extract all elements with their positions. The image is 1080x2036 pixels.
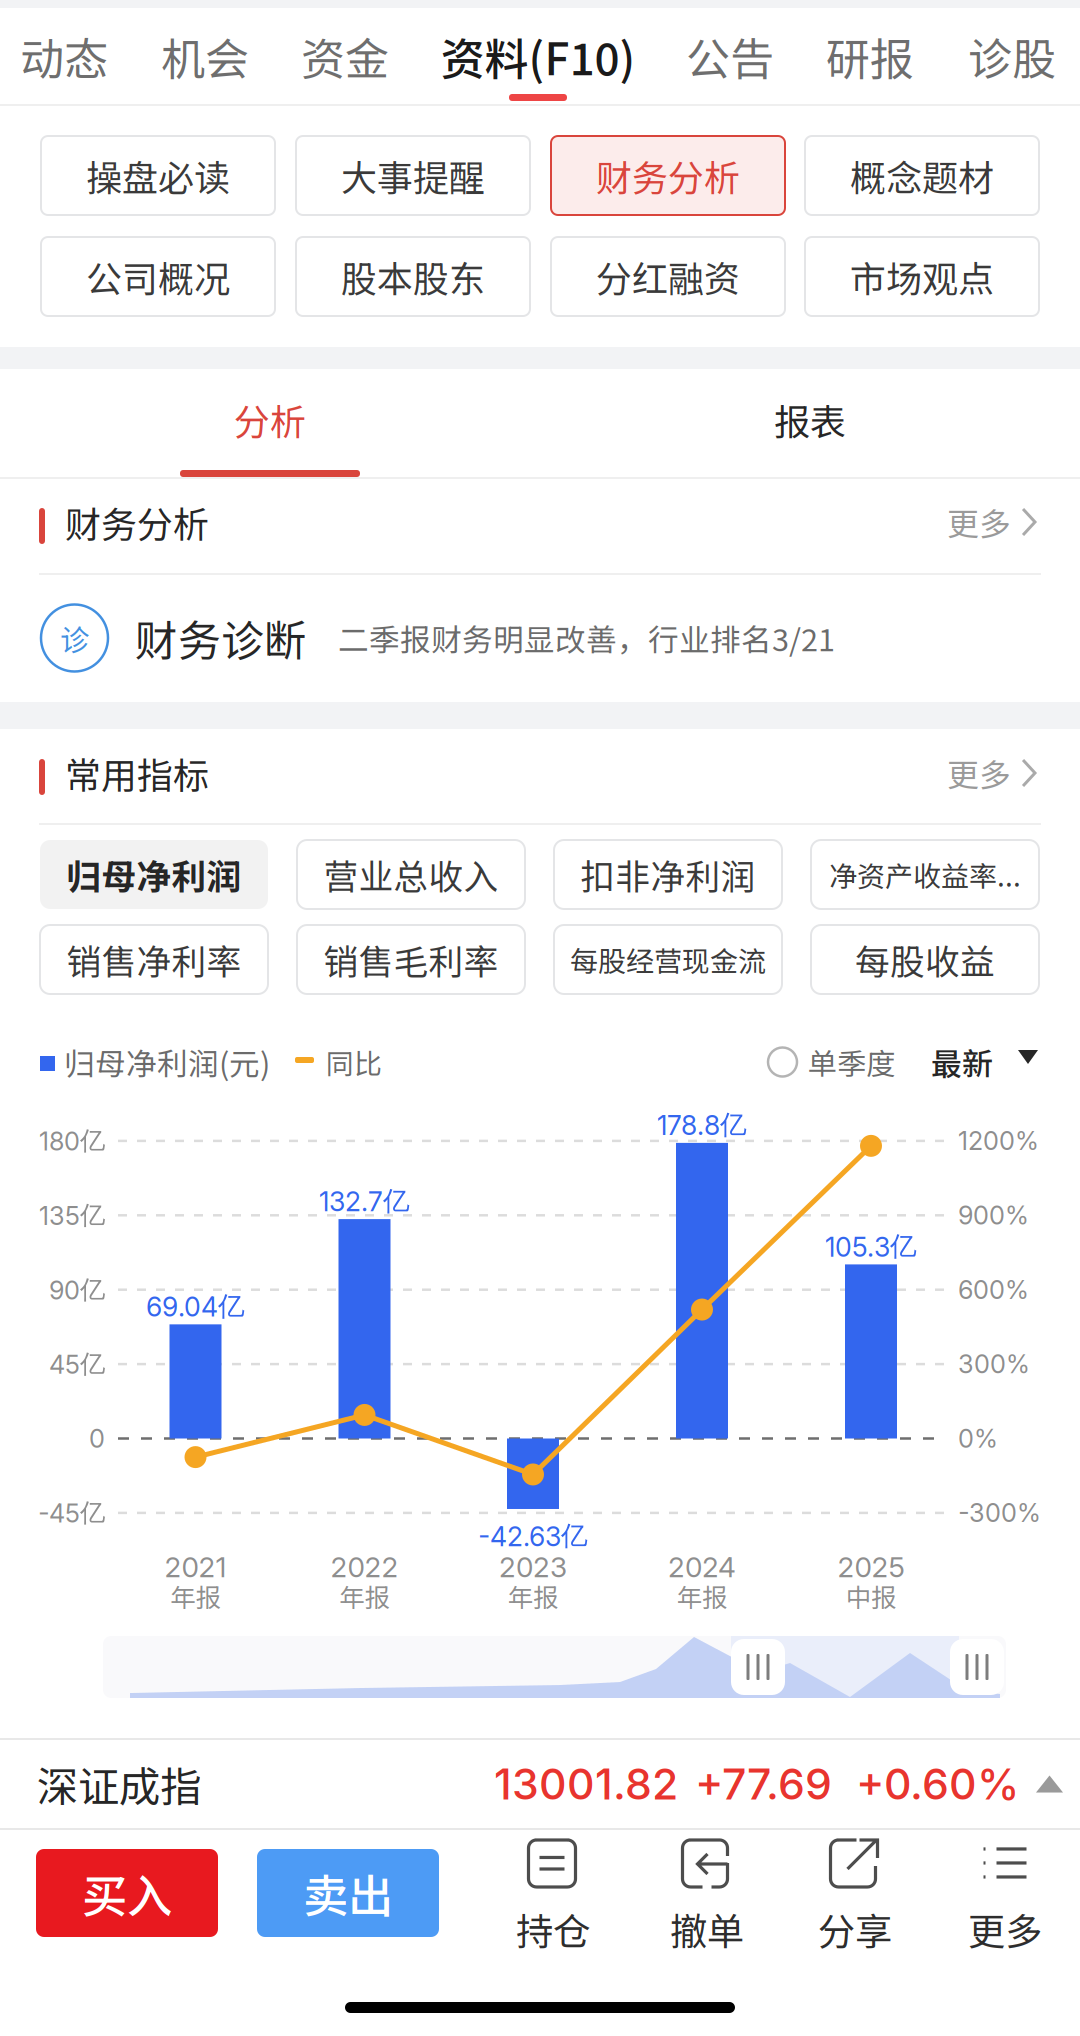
staticText: 2022 (330, 1550, 398, 1584)
staticText: 净资产收益率... (829, 854, 1021, 895)
staticText: 深证成指 (37, 1754, 201, 1814)
staticText: 归母净利润(元) (64, 1040, 270, 1084)
staticText: 财务诊断 (135, 607, 307, 669)
button[interactable]: 深证成指 (0, 0, 1080, 2036)
staticText: 研报 (826, 24, 914, 88)
staticText: 每股收益 (855, 934, 995, 985)
staticText: 最新 (931, 1040, 993, 1084)
staticText: 常用指标 (65, 747, 209, 799)
staticText: 营业总收入 (323, 849, 498, 900)
staticText: 单季度 (808, 1041, 895, 1083)
staticText: 扣非净利润 (580, 849, 755, 900)
staticText: 年报 (170, 1578, 220, 1614)
staticText: 财务分析 (596, 149, 740, 201)
staticText: 105.3亿 (825, 1230, 917, 1263)
staticText: 年报 (339, 1578, 389, 1614)
button[interactable]: 资金 (0, 0, 1080, 2036)
button[interactable]: 归母净利润 (0, 0, 1080, 2036)
button[interactable]: 扣非净利润 (0, 0, 1080, 2036)
staticText: 股本股东 (341, 250, 485, 302)
button[interactable]: 分析 (0, 0, 1080, 2036)
button[interactable]: 操盘必读 (0, 0, 1080, 2036)
button[interactable]: 诊股 (0, 0, 1080, 2036)
button[interactable]: 撤单 (0, 0, 1080, 2036)
staticText: 持仓 (516, 1902, 590, 1956)
staticText: 卖出 (303, 1860, 393, 1926)
button[interactable]: 诊 (0, 0, 1080, 2036)
staticText: 销售毛利率 (323, 934, 498, 985)
staticText: -42.63亿 (478, 1519, 588, 1553)
staticText: 分享 (818, 1902, 892, 1956)
button[interactable]: 公告 (0, 0, 1080, 2036)
staticText: 资料(F10) (440, 24, 635, 88)
staticText: 300% (958, 1349, 1030, 1379)
button[interactable]: 更多 (0, 0, 1080, 2036)
staticText: 买入 (82, 1860, 172, 1926)
staticText: 大事提醒 (341, 149, 485, 201)
staticText: 年报 (508, 1578, 558, 1614)
staticText: 90亿 (49, 1274, 105, 1306)
staticText: 0 (89, 1423, 105, 1454)
button[interactable]: 市场观点 (0, 0, 1080, 2036)
staticText: 132.7亿 (319, 1184, 410, 1218)
button[interactable]: 净资产收益率... (0, 0, 1080, 2036)
staticText: 撤单 (670, 1902, 744, 1956)
staticText: 180亿 (39, 1125, 105, 1157)
staticText: 动态 (20, 24, 108, 88)
staticText: 0% (958, 1423, 998, 1454)
staticText: +77.69 (695, 1758, 832, 1810)
button[interactable]: 每股经营现金流 (0, 0, 1080, 2036)
staticText: 2021 (164, 1550, 226, 1584)
button[interactable]: 持仓 (0, 0, 1080, 2036)
staticText: 操盘必读 (86, 149, 230, 201)
staticText: 概念题材 (850, 149, 994, 201)
button[interactable]: 大事提醒 (0, 0, 1080, 2036)
staticText: 二季报财务明显改善，行业排名3/21 (338, 616, 835, 660)
staticText: 1200% (958, 1126, 1039, 1156)
button[interactable]: 动态 (0, 0, 1080, 2036)
staticText: 分析 (234, 393, 306, 445)
staticText: 中报 (846, 1578, 896, 1614)
button[interactable]: 更多 (0, 0, 1080, 2036)
button[interactable]: 销售毛利率 (0, 0, 1080, 2036)
button[interactable]: 分享 (0, 0, 1080, 2036)
button[interactable]: Range handle (0, 0, 1080, 2036)
staticText: 2025 (837, 1550, 904, 1584)
staticText: 600% (958, 1274, 1029, 1305)
staticText: 资金 (301, 24, 389, 88)
staticText: 市场观点 (850, 250, 994, 302)
button[interactable]: 买入 (0, 0, 1080, 2036)
staticText: 归母净利润 (66, 849, 241, 900)
button[interactable]: 机会 (0, 0, 1080, 2036)
staticText: 45亿 (49, 1348, 105, 1380)
staticText: 诊 (60, 617, 89, 659)
button[interactable]: 财务分析 (0, 0, 1080, 2036)
staticText: 更多 (968, 1902, 1042, 1956)
button[interactable]: 每股收益 (0, 0, 1080, 2036)
button[interactable]: 股本股东 (0, 0, 1080, 2036)
staticText: +0.60% (856, 1758, 1019, 1810)
staticText: 13001.82 (494, 1758, 678, 1810)
button[interactable]: 资料(F10) (0, 0, 1080, 2036)
staticText: 2024 (668, 1550, 736, 1584)
button[interactable]: 更多 (0, 0, 1080, 2036)
button[interactable]: 概念题材 (0, 0, 1080, 2036)
staticText: 年报 (677, 1578, 727, 1614)
button[interactable]: 单季度 (0, 0, 1080, 2036)
button[interactable]: 销售净利率 (0, 0, 1080, 2036)
staticText: 900% (958, 1200, 1029, 1231)
button[interactable]: 分红融资 (0, 0, 1080, 2036)
staticText: 178.8亿 (657, 1108, 747, 1142)
button[interactable]: Period menu (0, 0, 1080, 2036)
button[interactable]: 最新 (0, 0, 1080, 2036)
button[interactable]: 研报 (0, 0, 1080, 2036)
button[interactable]: 卖出 (0, 0, 1080, 2036)
staticText: 135亿 (39, 1199, 105, 1231)
staticText: 公告 (686, 24, 774, 88)
staticText: 69.04亿 (146, 1290, 245, 1323)
staticText: 诊股 (968, 24, 1056, 88)
button[interactable]: Range handle (0, 0, 1080, 2036)
button[interactable]: 营业总收入 (0, 0, 1080, 2036)
button[interactable]: 公司概况 (0, 0, 1080, 2036)
button[interactable]: 报表 (0, 0, 1080, 2036)
